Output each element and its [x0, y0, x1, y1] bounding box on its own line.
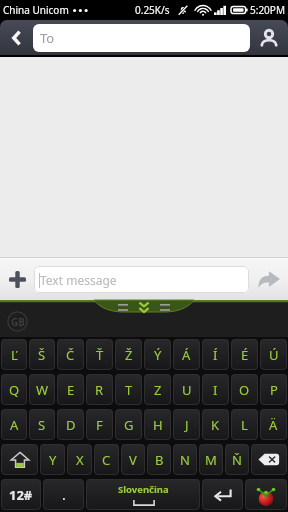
- button[interactable]: Keyboard options: [245, 479, 287, 510]
- staticText: China Unicom: [3, 3, 69, 17]
- staticText: Z: [154, 381, 162, 399]
- button[interactable]: Í: [202, 339, 229, 370]
- button[interactable]: Slovenčina: [86, 479, 200, 510]
- staticText: Ľ: [11, 346, 18, 364]
- button[interactable]: Q: [1, 374, 27, 405]
- staticText: L: [241, 416, 248, 434]
- button[interactable]: É: [231, 339, 258, 370]
- staticText: G: [124, 416, 134, 434]
- button[interactable]: Ý: [144, 339, 171, 370]
- button[interactable]: Č: [57, 339, 84, 370]
- button[interactable]: Text message: [34, 266, 249, 293]
- staticText: Ž: [125, 346, 133, 364]
- staticText: I: [213, 381, 218, 399]
- staticText: A: [10, 416, 19, 434]
- staticText: U: [182, 381, 192, 399]
- staticText: M: [205, 451, 217, 469]
- staticText: 12#: [9, 486, 33, 504]
- staticText: Ý: [154, 346, 162, 364]
- button[interactable]: P: [260, 374, 287, 405]
- staticText: D: [66, 416, 76, 434]
- staticText: C: [102, 451, 111, 469]
- staticText: O: [239, 381, 250, 399]
- staticText: Slovenčina: [118, 483, 169, 496]
- button[interactable]: M: [199, 444, 223, 475]
- button[interactable]: C: [94, 444, 119, 475]
- button[interactable]: 12#: [1, 479, 41, 510]
- staticText: V: [129, 451, 137, 469]
- button[interactable]: G: [115, 409, 142, 440]
- button[interactable]: V: [121, 444, 145, 475]
- staticText: Ť: [96, 346, 104, 364]
- staticText: K: [211, 416, 220, 434]
- staticText: F: [96, 416, 103, 434]
- button[interactable]: L: [231, 409, 258, 440]
- button[interactable]: K: [202, 409, 229, 440]
- staticText: Text message: [40, 272, 117, 288]
- staticText: Á: [182, 346, 191, 364]
- button[interactable]: Ľ: [1, 339, 27, 370]
- staticText: T: [125, 381, 133, 399]
- staticText: 0.25K/s: [135, 3, 170, 17]
- button[interactable]: Enter: [202, 479, 243, 510]
- button[interactable]: A: [1, 409, 27, 440]
- button[interactable]: Contacts: [250, 20, 288, 55]
- button[interactable]: W: [29, 374, 55, 405]
- staticText: To: [40, 29, 55, 47]
- staticText: É: [241, 346, 249, 364]
- button[interactable]: J: [173, 409, 200, 440]
- staticText: Ä: [269, 416, 278, 434]
- staticText: Q: [9, 381, 20, 399]
- button[interactable]: N: [173, 444, 197, 475]
- staticText: W: [36, 381, 49, 399]
- button[interactable]: Ň: [225, 444, 249, 475]
- button[interactable]: Ť: [86, 339, 113, 370]
- button[interactable]: T: [115, 374, 142, 405]
- button[interactable]: Á: [173, 339, 200, 370]
- button[interactable]: R: [86, 374, 113, 405]
- staticText: Č: [66, 346, 75, 364]
- staticText: X: [76, 451, 84, 469]
- button[interactable]: Ä: [260, 409, 287, 440]
- staticText: B: [155, 451, 164, 469]
- staticText: J: [185, 416, 189, 434]
- staticText: R: [95, 381, 104, 399]
- staticText: E: [67, 381, 75, 399]
- button[interactable]: Shift: [1, 444, 38, 475]
- staticText: Š: [38, 346, 46, 364]
- staticText: N: [180, 451, 190, 469]
- staticText: Y: [49, 451, 57, 469]
- button[interactable]: Š: [29, 339, 55, 370]
- staticText: Ú: [269, 346, 279, 364]
- button[interactable]: D: [57, 409, 84, 440]
- button[interactable]: U: [173, 374, 200, 405]
- staticText: H: [153, 416, 163, 434]
- staticText: Í: [213, 346, 218, 364]
- staticText: Ň: [232, 451, 242, 469]
- button[interactable]: Add attachment: [0, 258, 34, 300]
- button[interactable]: Ú: [260, 339, 287, 370]
- button[interactable]: O: [231, 374, 258, 405]
- staticText: 5:20PM: [250, 3, 285, 17]
- button[interactable]: Y: [40, 444, 65, 475]
- button[interactable]: X: [67, 444, 92, 475]
- staticText: GB: [11, 315, 25, 329]
- button[interactable]: B: [147, 444, 171, 475]
- button[interactable]: GB: [7, 311, 28, 332]
- button[interactable]: To: [33, 24, 250, 52]
- button[interactable]: I: [202, 374, 229, 405]
- button[interactable]: E: [57, 374, 84, 405]
- button[interactable]: Back: [0, 20, 33, 55]
- button[interactable]: S: [29, 409, 55, 440]
- staticText: S: [38, 416, 46, 434]
- staticText: .: [62, 485, 66, 504]
- button[interactable]: Ž: [115, 339, 142, 370]
- button[interactable]: Send: [249, 258, 288, 300]
- button[interactable]: H: [144, 409, 171, 440]
- button[interactable]: .: [43, 479, 84, 510]
- staticText: P: [270, 381, 278, 399]
- button[interactable]: F: [86, 409, 113, 440]
- button[interactable]: Z: [144, 374, 171, 405]
- button[interactable]: Backspace: [251, 444, 287, 475]
